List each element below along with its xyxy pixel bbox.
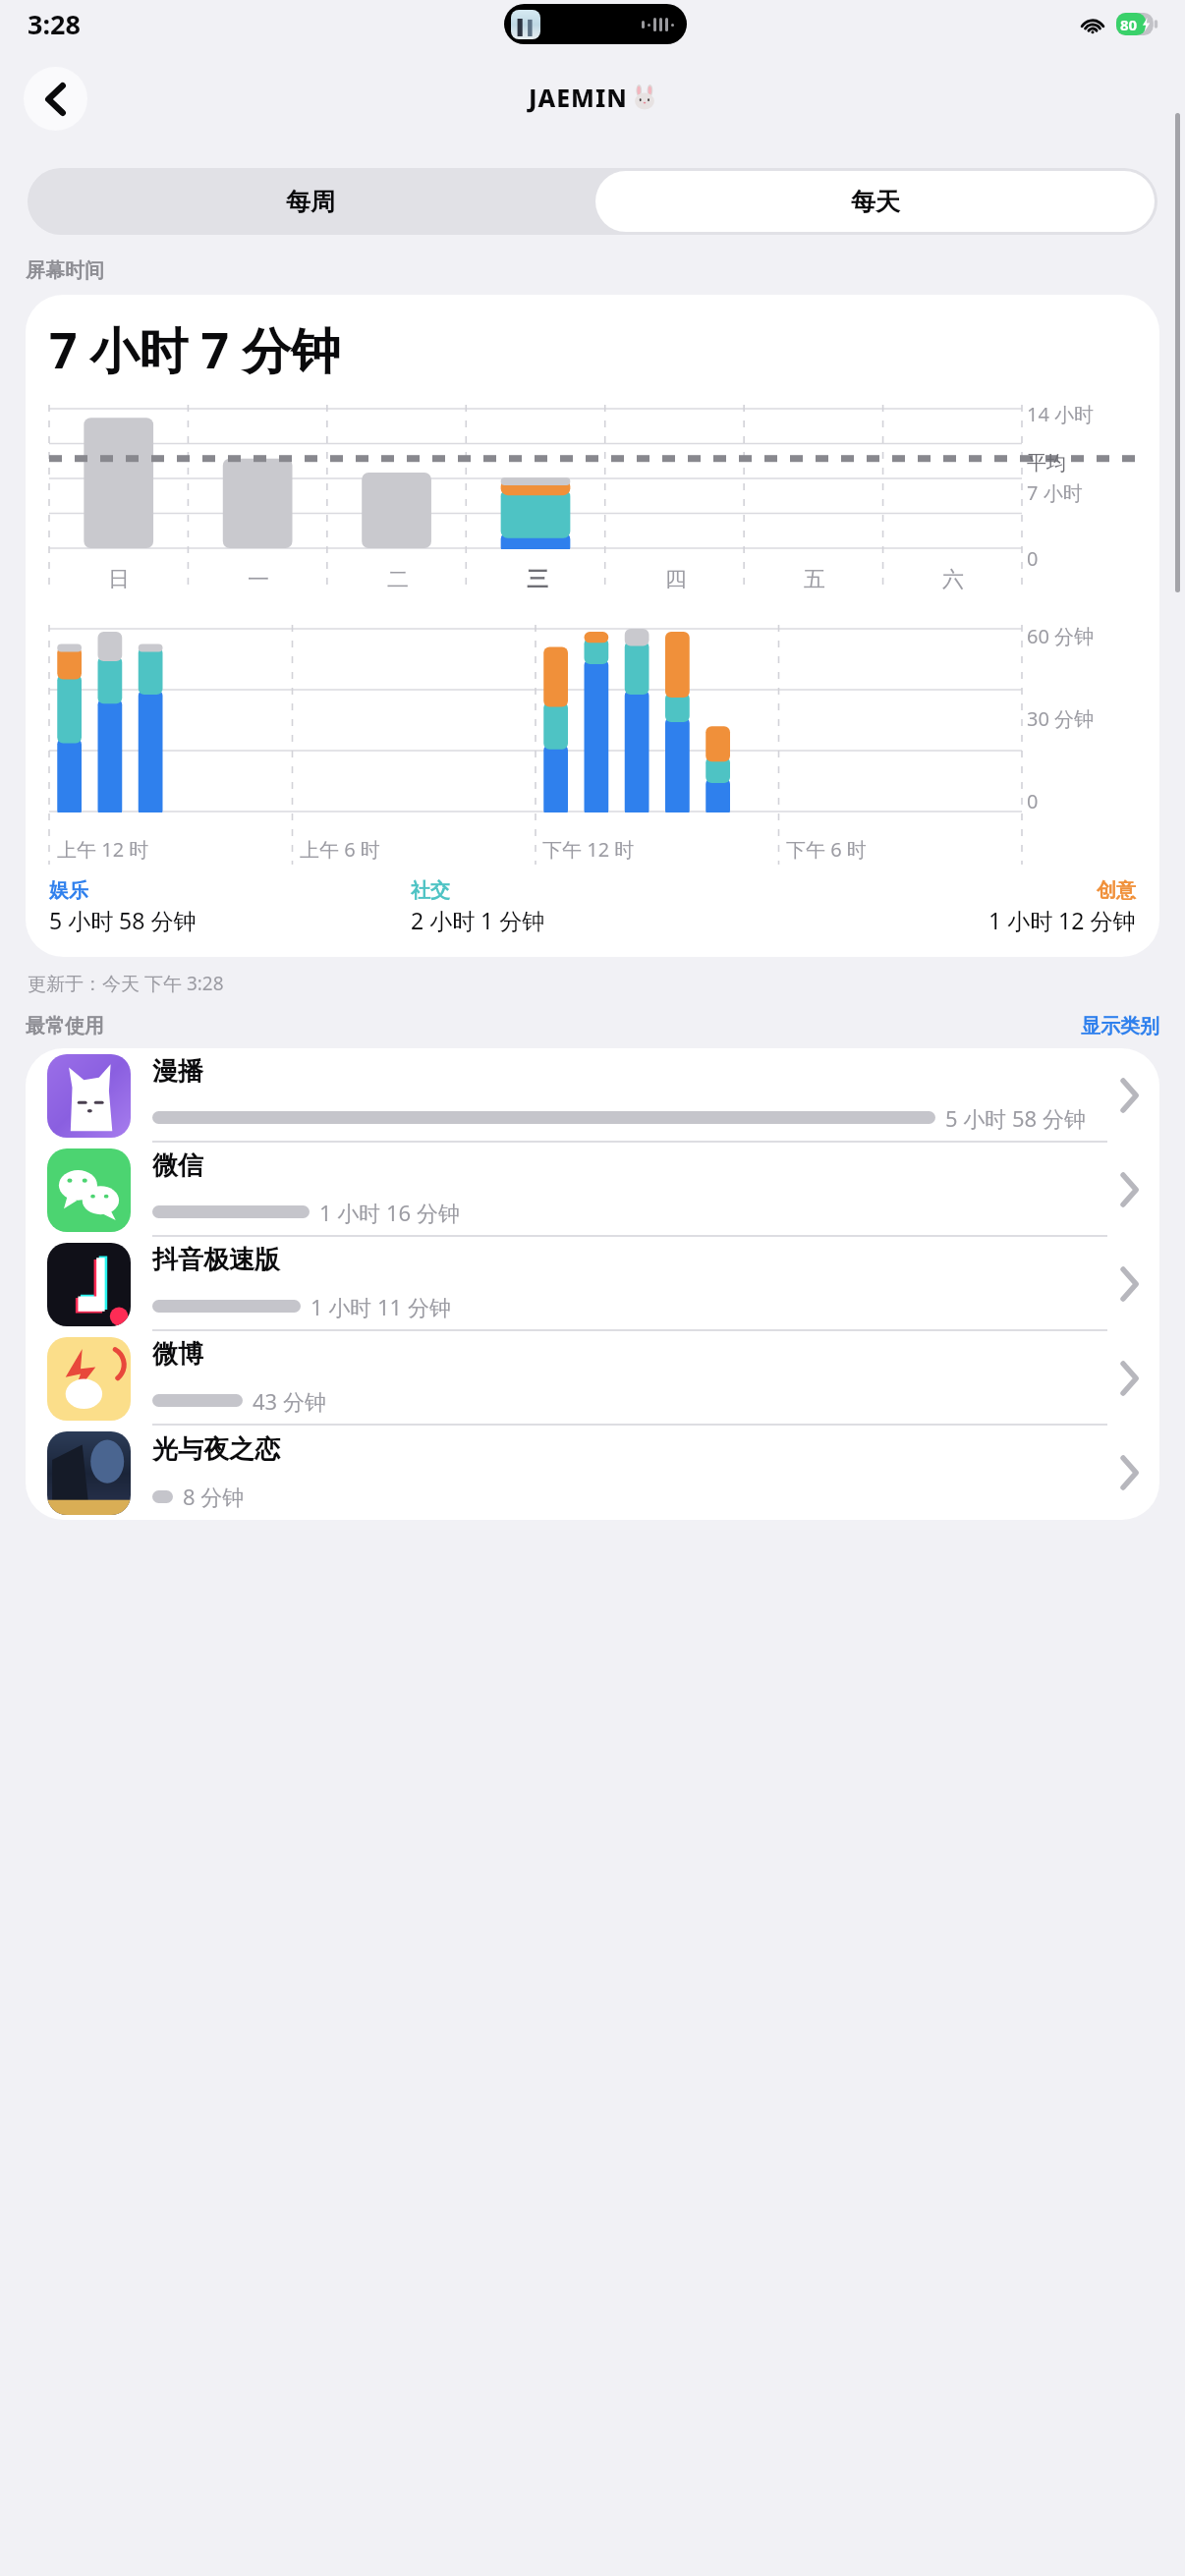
staticText: 7 小时 xyxy=(1027,479,1083,506)
button[interactable]: 漫播 xyxy=(26,1048,1159,1143)
staticText: 8 分钟 xyxy=(183,1482,245,1511)
staticText: 0 xyxy=(1027,545,1039,572)
staticText: 六 xyxy=(942,566,964,593)
staticText: 5 小时 58 分钟 xyxy=(945,1103,1086,1133)
staticText: 1 小时 11 分钟 xyxy=(310,1292,451,1321)
staticText: 日 xyxy=(108,566,130,593)
staticText: 平均 xyxy=(1027,451,1066,476)
staticText: 二 xyxy=(387,566,409,593)
staticText: 显示类别 xyxy=(1081,1014,1159,1038)
staticText: 社交 xyxy=(411,878,450,903)
staticText: 漫播 xyxy=(152,1055,203,1088)
staticText: 43 分钟 xyxy=(253,1386,326,1416)
staticText: 3:28 xyxy=(28,6,81,42)
staticText: 下午 6 时 xyxy=(786,836,867,863)
staticText: 60 分钟 xyxy=(1027,623,1095,649)
staticText: 娱乐 xyxy=(49,878,88,903)
staticText: 五 xyxy=(804,566,825,593)
staticText: 一 xyxy=(248,566,269,593)
staticText: 每天 xyxy=(851,187,900,217)
button[interactable]: 微信 xyxy=(26,1143,1159,1237)
staticText: 上午 6 时 xyxy=(300,836,380,863)
staticText: 抖音极速版 xyxy=(152,1244,280,1276)
button[interactable]: 抖音极速版 xyxy=(26,1237,1159,1331)
staticText: 5 小时 58 分钟 xyxy=(49,905,197,935)
staticText: 创意 xyxy=(1097,878,1136,903)
staticText: 光与夜之恋 xyxy=(152,1433,280,1466)
staticText: 微信 xyxy=(152,1149,203,1182)
staticText: 1 小时 16 分钟 xyxy=(319,1198,460,1227)
button[interactable]: 微博 xyxy=(26,1331,1159,1426)
staticText: 三 xyxy=(527,566,548,593)
staticText: 更新于：今天 下午 3:28 xyxy=(28,971,224,996)
staticText: JAEMIN xyxy=(529,81,628,114)
staticText: 四 xyxy=(665,566,687,593)
staticText: 14 小时 xyxy=(1027,401,1095,427)
staticText: 1 小时 12 分钟 xyxy=(988,905,1136,935)
staticText: 上午 12 时 xyxy=(57,836,149,863)
button[interactable]: 每天 xyxy=(595,171,1155,232)
staticText: 下午 12 时 xyxy=(542,836,635,863)
staticText: 每周 xyxy=(286,187,335,217)
staticText: 2 小时 1 分钟 xyxy=(411,905,545,935)
button[interactable]: 显示类别 xyxy=(1081,1014,1159,1038)
staticText: 30 分钟 xyxy=(1027,705,1095,732)
staticText: 7 小时 7 分钟 xyxy=(49,316,341,383)
staticText: 屏幕时间 xyxy=(26,258,104,283)
staticText: 80 xyxy=(1120,15,1138,34)
staticText: 最常使用 xyxy=(26,1014,104,1038)
button[interactable]: 每周 xyxy=(28,168,592,235)
button[interactable]: Back xyxy=(24,67,87,131)
staticText: 0 xyxy=(1027,788,1039,814)
staticText: 微博 xyxy=(152,1338,203,1371)
button[interactable]: 光与夜之恋 xyxy=(26,1426,1159,1520)
